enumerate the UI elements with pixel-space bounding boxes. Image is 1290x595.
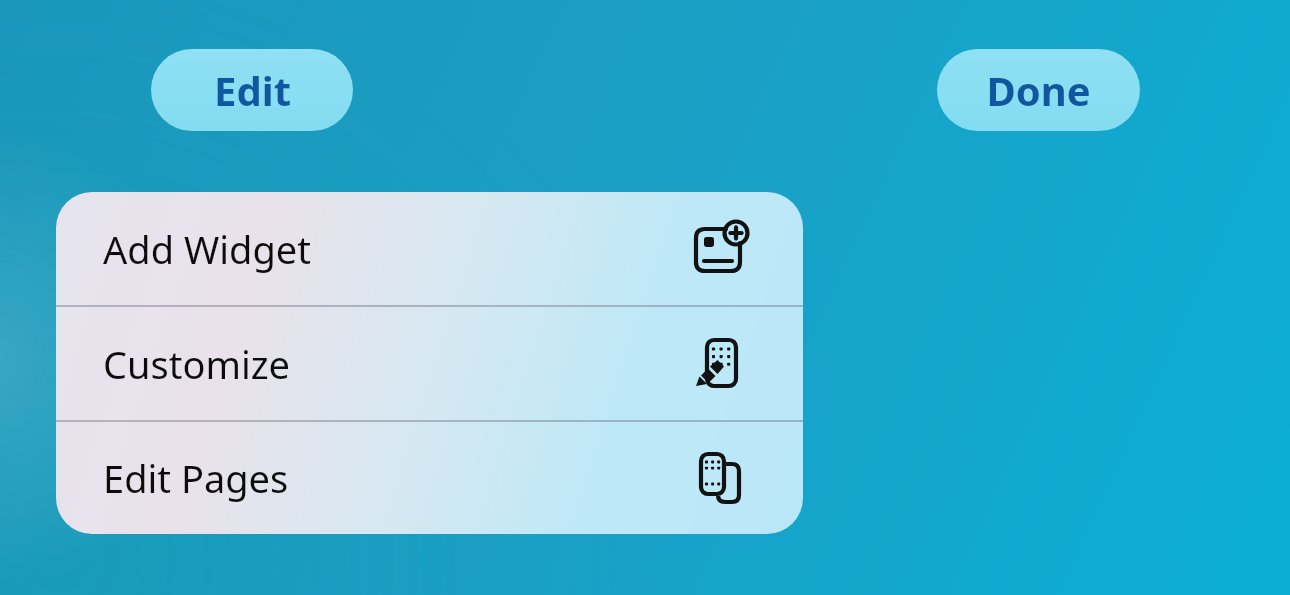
button[interactable]: Edit (151, 49, 353, 131)
button[interactable]: Edit Pages (56, 422, 803, 534)
staticText: Edit (214, 63, 291, 117)
staticText: Done (986, 63, 1091, 117)
button[interactable]: Done (937, 49, 1140, 131)
staticText: Edit Pages (103, 452, 289, 504)
button[interactable]: Add Widget (56, 192, 803, 305)
staticText: Customize (103, 338, 291, 390)
button[interactable]: Customize (56, 307, 803, 420)
other: Edit Pages (692, 450, 748, 506)
other: Customize (692, 336, 748, 392)
other: Add Widget (692, 221, 748, 277)
staticText: Add Widget (103, 223, 311, 275)
